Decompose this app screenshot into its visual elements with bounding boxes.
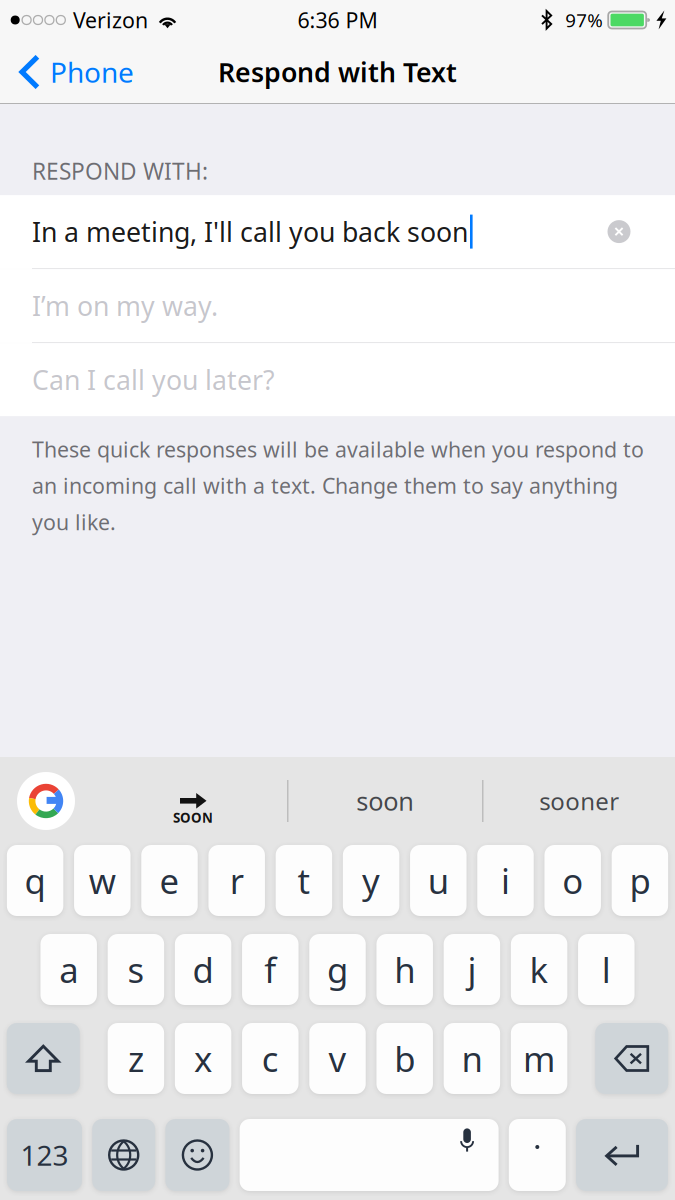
button[interactable]: Next keyboard <box>92 1119 155 1191</box>
staticText: e <box>159 857 179 903</box>
staticText: k <box>530 946 549 992</box>
staticText: y <box>362 857 380 903</box>
staticText: g <box>327 946 348 992</box>
button[interactable]: k <box>511 934 567 1005</box>
button[interactable]: v <box>309 1023 366 1094</box>
button[interactable]: n <box>444 1023 500 1094</box>
button[interactable]: l <box>578 934 634 1005</box>
button[interactable]: f <box>242 934 299 1005</box>
button[interactable]: i <box>477 845 534 916</box>
button[interactable]: o <box>544 845 601 916</box>
button[interactable]: s <box>108 934 164 1005</box>
button[interactable]: sooner <box>483 769 675 833</box>
button[interactable]: I’m on my way. <box>0 269 675 342</box>
staticText: s <box>127 946 144 992</box>
staticText: Phone <box>50 53 134 91</box>
button[interactable]: u <box>410 845 467 916</box>
button[interactable]: r <box>208 845 265 916</box>
button[interactable]: c <box>242 1023 299 1094</box>
staticText: soon <box>356 784 414 818</box>
button[interactable]: w <box>74 845 131 916</box>
button[interactable]: m <box>511 1023 567 1094</box>
button[interactable]: Return <box>576 1119 668 1191</box>
staticText: i <box>501 857 510 903</box>
staticText: SOON <box>173 809 213 826</box>
staticText: u <box>428 857 449 903</box>
button[interactable]: Space <box>240 1119 499 1191</box>
button[interactable]: e <box>141 845 198 916</box>
staticText: z <box>128 1035 144 1081</box>
staticText: x <box>194 1035 212 1081</box>
button[interactable]: Emoji <box>165 1119 229 1191</box>
staticText: These quick responses will be available … <box>32 435 644 536</box>
staticText: d <box>193 946 214 992</box>
button[interactable]: Shift <box>7 1023 80 1094</box>
staticText: m <box>523 1035 555 1081</box>
staticText: w <box>89 857 116 903</box>
staticText: sooner <box>539 785 619 817</box>
button[interactable]: In a meeting, I'll call you back soon <box>0 195 675 268</box>
button[interactable]: y <box>343 845 399 916</box>
button[interactable]: a <box>40 934 97 1005</box>
button[interactable]: z <box>108 1023 164 1094</box>
staticText: v <box>328 1035 346 1081</box>
button[interactable]: b <box>376 1023 433 1094</box>
button[interactable]: g <box>309 934 366 1005</box>
staticText: a <box>59 946 78 992</box>
button[interactable]: p <box>612 845 668 916</box>
staticText: Verizon <box>73 6 148 34</box>
button[interactable]: t <box>276 845 332 916</box>
button[interactable]: Backspace <box>595 1023 668 1094</box>
button[interactable]: d <box>175 934 231 1005</box>
staticText: t <box>297 857 310 903</box>
staticText: 6:36 PM <box>297 6 377 34</box>
staticText: o <box>562 857 583 903</box>
button[interactable]: Google <box>17 772 75 830</box>
button[interactable]: Period <box>509 1119 566 1191</box>
button[interactable]: Soon emoji suggestion <box>143 769 243 833</box>
button[interactable]: j <box>444 934 500 1005</box>
button[interactable]: soon <box>288 769 482 833</box>
button[interactable]: q <box>7 845 63 916</box>
button[interactable]: x <box>175 1023 231 1094</box>
staticText: n <box>461 1035 482 1081</box>
staticText: p <box>629 857 650 903</box>
staticText: In a meeting, I'll call you back soon <box>32 214 468 249</box>
staticText: q <box>25 857 46 903</box>
staticText: r <box>230 857 244 903</box>
button[interactable]: Can I call you later? <box>0 343 675 416</box>
button[interactable]: Clear text <box>596 201 642 263</box>
button[interactable]: h <box>376 934 433 1005</box>
button[interactable]: Phone <box>0 43 146 101</box>
staticText: b <box>394 1035 415 1081</box>
staticText: I’m on my way. <box>32 288 218 323</box>
staticText: Can I call you later? <box>32 362 275 397</box>
staticText: h <box>394 946 415 992</box>
staticText: l <box>602 946 611 992</box>
staticText: f <box>264 946 276 992</box>
staticText: 97% <box>565 8 603 32</box>
staticText: j <box>467 946 476 992</box>
button[interactable]: 123 <box>7 1119 82 1191</box>
staticText: RESPOND WITH: <box>32 156 208 186</box>
staticText: Respond with Text <box>218 54 457 90</box>
staticText: c <box>262 1035 279 1081</box>
staticText: 123 <box>20 1136 68 1174</box>
